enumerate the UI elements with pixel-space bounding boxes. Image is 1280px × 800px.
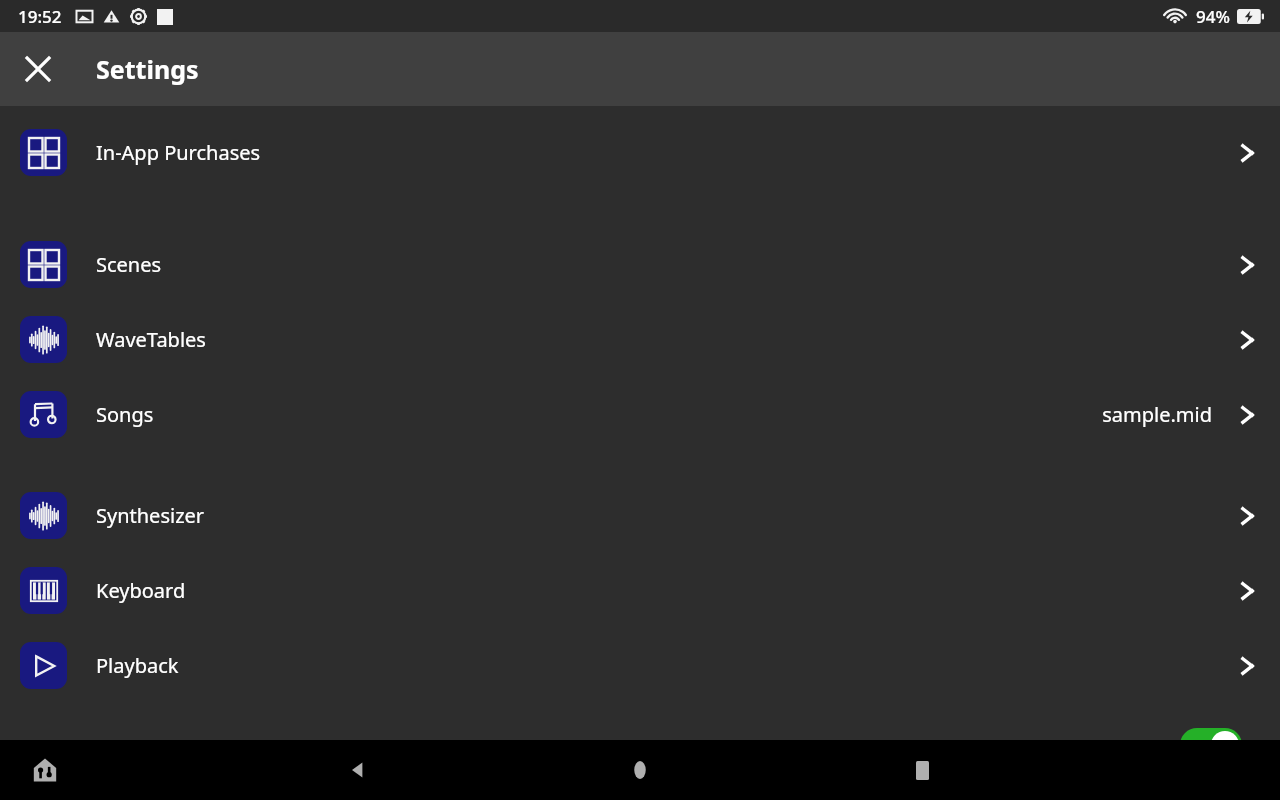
other: Scenes — [1234, 252, 1260, 278]
button[interactable]: Back — [333, 745, 383, 795]
button[interactable]: Keyboard — [0, 553, 1280, 628]
button[interactable]: Input method — [22, 747, 68, 793]
button[interactable]: Recents — [897, 745, 947, 795]
other: Keyboard — [1234, 578, 1260, 604]
other: Songs — [1234, 402, 1260, 428]
staticText: In-App Purchases — [96, 139, 1234, 166]
staticText: 94% — [1196, 5, 1230, 28]
button[interactable]: Synthesizer — [0, 478, 1280, 553]
staticText: WaveTables — [96, 326, 1234, 353]
staticText: Songs — [96, 401, 1102, 428]
staticText: 19:52 — [18, 5, 62, 28]
button[interactable]: Scenes — [0, 227, 1280, 302]
staticText: Synthesizer — [96, 502, 1234, 529]
button[interactable]: Close — [10, 41, 66, 97]
other: In-App Purchases — [1234, 140, 1260, 166]
button[interactable]: Playback — [0, 628, 1280, 703]
button[interactable]: Songs — [0, 377, 1280, 452]
other: Playback — [1234, 653, 1260, 679]
staticText: sample.mid — [1102, 401, 1212, 428]
other: Synthesizer — [1234, 503, 1260, 529]
staticText: Settings — [96, 52, 199, 86]
button[interactable]: WaveTables — [0, 302, 1280, 377]
button[interactable]: In-App Purchases — [0, 115, 1280, 190]
button[interactable]: Home — [615, 745, 665, 795]
staticText: Keyboard — [96, 577, 1234, 604]
staticText: Playback — [96, 652, 1234, 679]
other: WaveTables — [1234, 327, 1260, 353]
staticText: Scenes — [96, 251, 1234, 278]
button[interactable]: Toggle — [1180, 728, 1242, 762]
